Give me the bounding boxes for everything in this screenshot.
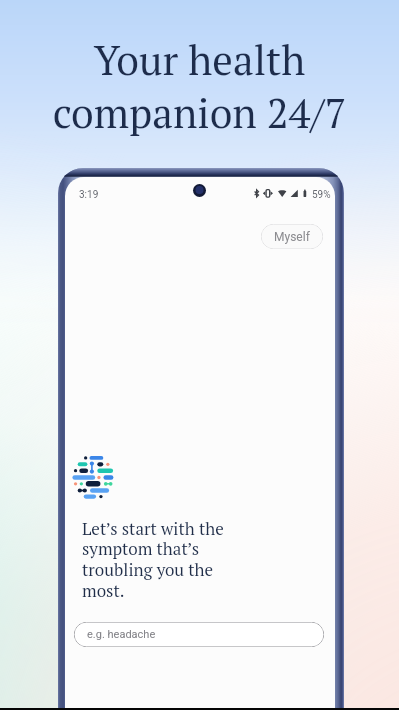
staticText: 3:19: [79, 189, 99, 201]
other: Status icons: [253, 189, 309, 198]
staticText: Myself: [274, 230, 310, 244]
button[interactable]: Myself: [261, 224, 323, 249]
staticText: Your health companion 24/7: [0, 32, 399, 140]
staticText: 59%: [312, 189, 331, 201]
staticText: e.g. headache: [87, 628, 156, 641]
staticText: Let’s start with the symptom that’s trou…: [82, 517, 224, 602]
button[interactable]: e.g. headache: [74, 622, 324, 647]
